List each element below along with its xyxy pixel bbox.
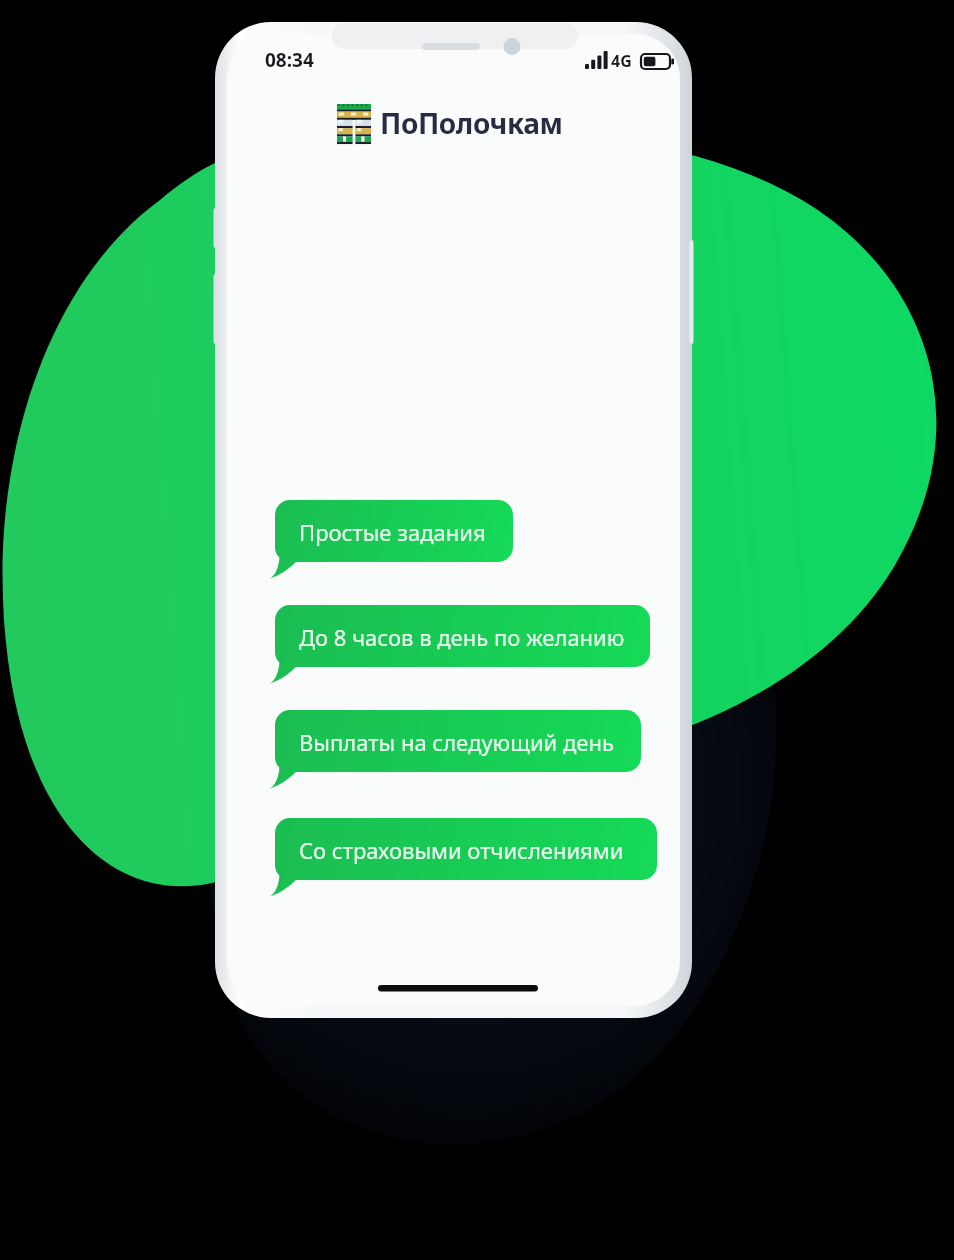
- button[interactable]: ПоПолочкам logo: [335, 101, 379, 143]
- staticText: 4G: [611, 50, 632, 72]
- staticText: До 8 часов в день по желанию: [299, 622, 625, 652]
- button[interactable]: ПоПолочкам: [380, 104, 563, 142]
- button[interactable]: Выплаты на следующий день: [275, 710, 641, 772]
- staticText: ПоПолочкам: [380, 104, 563, 142]
- staticText: 08:34: [265, 47, 314, 73]
- staticText: Простые задания: [299, 517, 486, 547]
- button[interactable]: Простые задания: [275, 500, 513, 562]
- staticText: Выплаты на следующий день: [299, 727, 614, 757]
- button[interactable]: До 8 часов в день по желанию: [275, 605, 650, 667]
- staticText: Со страховыми отчислениями: [299, 835, 624, 865]
- button[interactable]: Со страховыми отчислениями: [275, 818, 657, 880]
